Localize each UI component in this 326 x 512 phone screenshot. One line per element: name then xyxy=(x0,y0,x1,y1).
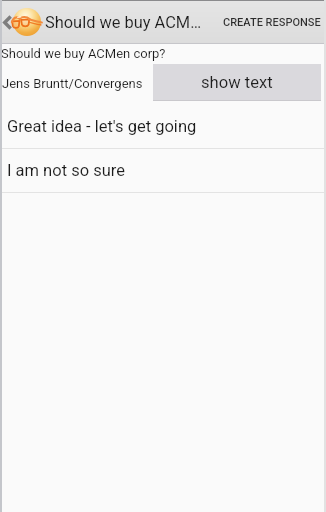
staticText: Should we buy ACM… xyxy=(45,13,202,32)
button[interactable]: CREATE RESPONSE xyxy=(215,0,326,44)
button[interactable]: Navigate up xyxy=(0,0,202,44)
staticText: Jens Bruntt/Convergens xyxy=(2,76,143,91)
staticText: Great idea - let's get going xyxy=(7,117,197,136)
other: Navigate up xyxy=(4,16,11,29)
staticText: show text xyxy=(201,73,273,92)
button[interactable]: show text xyxy=(153,64,321,100)
staticText: I am not so sure xyxy=(7,161,125,180)
staticText: CREATE RESPONSE xyxy=(223,16,321,29)
button[interactable]: I am not so sure xyxy=(0,149,326,192)
button[interactable]: Great idea - let's get going xyxy=(0,105,326,148)
staticText: Should we buy ACMen corp? xyxy=(1,46,166,61)
